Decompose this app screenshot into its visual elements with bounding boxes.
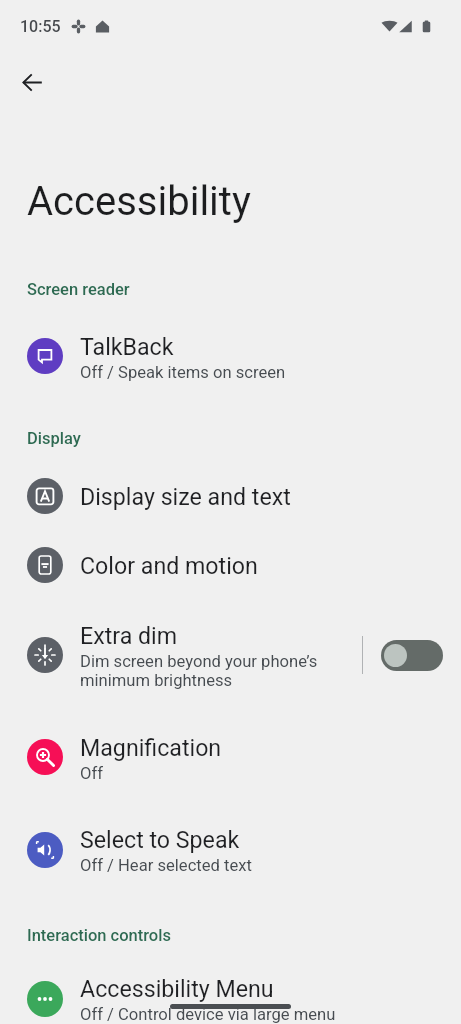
staticText: Accessibility	[27, 178, 251, 225]
button[interactable]: Magnification	[0, 711, 461, 803]
staticText: Off	[80, 764, 103, 783]
staticText: Extra dim	[80, 622, 178, 649]
button[interactable]: Extra dim toggle, off	[381, 640, 443, 671]
staticText: TalkBack	[80, 333, 174, 360]
staticText: Screen reader	[27, 280, 130, 299]
staticText: Color and motion	[80, 552, 258, 579]
button[interactable]: Accessibility Menu	[0, 973, 461, 1024]
staticText: Magnification	[80, 734, 222, 761]
staticText: Off / Speak items on screen	[80, 363, 286, 382]
staticText: Select to Speak	[80, 826, 240, 853]
staticText: Interaction controls	[27, 926, 171, 945]
staticText: Off / Hear selected text	[80, 856, 252, 875]
button[interactable]: Color and motion	[0, 530, 461, 599]
staticText: Display size and text	[80, 483, 291, 510]
button[interactable]: Select to Speak	[0, 803, 461, 896]
staticText: 10:55	[20, 17, 61, 36]
staticText: Off / Control device via large menu	[80, 1005, 336, 1024]
staticText: Display	[27, 429, 81, 448]
button[interactable]: Display size and text	[0, 461, 461, 530]
button[interactable]: TalkBack	[0, 310, 461, 402]
staticText: Dim screen beyond your phone’s minimum b…	[80, 652, 318, 690]
button[interactable]: Extra dim	[0, 599, 461, 711]
button[interactable]: Navigate up	[12, 62, 52, 102]
staticText: Accessibility Menu	[80, 975, 274, 1002]
